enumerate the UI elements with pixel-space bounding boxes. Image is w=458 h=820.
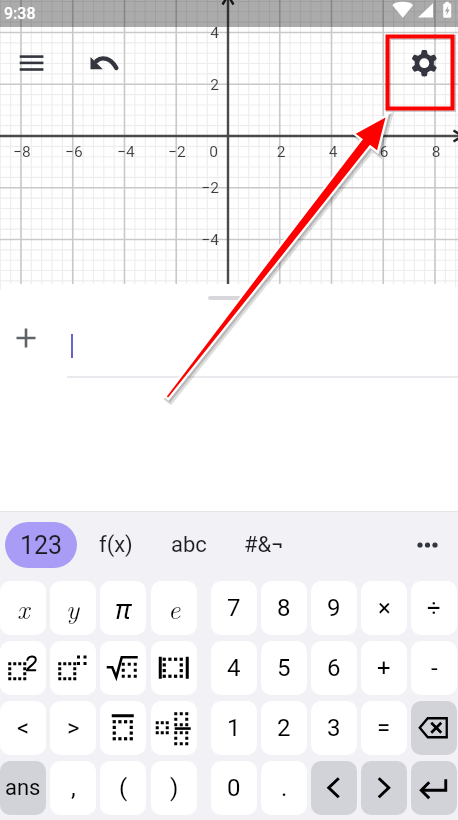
staticText: f(x) <box>99 532 133 558</box>
button[interactable]: 5 <box>261 641 307 695</box>
button[interactable]: × <box>361 581 407 635</box>
button[interactable]: abc <box>160 522 218 568</box>
button[interactable]: . <box>261 761 307 815</box>
button[interactable]: Square root <box>100 641 146 695</box>
staticText: −4 <box>183 231 219 249</box>
staticText: 4 <box>319 143 347 161</box>
staticText: > <box>67 714 80 742</box>
button[interactable]: > <box>50 701 96 755</box>
button[interactable]: x <box>0 581 46 635</box>
staticText: 3 <box>327 714 341 742</box>
staticText: −6 <box>60 143 88 161</box>
staticText: e <box>168 589 181 627</box>
staticText: ÷ <box>427 594 441 622</box>
button[interactable]: 8 <box>261 581 307 635</box>
staticText: abc <box>171 532 207 558</box>
button[interactable]: More options <box>407 522 453 568</box>
staticText: × <box>378 594 391 622</box>
button[interactable]: Fraction <box>100 701 146 755</box>
button[interactable]: 1 <box>211 701 257 755</box>
button[interactable]: Add expression <box>8 320 44 356</box>
button[interactable]: 0 <box>211 761 257 815</box>
staticText: < <box>17 714 30 742</box>
staticText: + <box>377 654 391 682</box>
staticText: 7 <box>227 594 241 622</box>
button[interactable]: Move right <box>361 761 407 815</box>
staticText: 9:38 <box>4 4 36 23</box>
button[interactable]: Square <box>0 641 46 695</box>
staticText: −2 <box>163 143 191 161</box>
button[interactable]: 9 <box>311 581 357 635</box>
button[interactable]: Mixed fraction <box>151 701 197 755</box>
staticText: 4 <box>227 654 241 682</box>
staticText: 123 <box>20 531 63 560</box>
button[interactable]: Undo <box>78 40 130 92</box>
staticText: 8 <box>277 594 291 622</box>
button[interactable]: Absolute value <box>151 641 197 695</box>
button[interactable]: - <box>411 641 457 695</box>
button[interactable]: ( <box>100 761 146 815</box>
staticText: , <box>71 774 76 802</box>
staticText: 1 <box>227 714 241 742</box>
button[interactable]: 7 <box>211 581 257 635</box>
button[interactable]: < <box>0 701 46 755</box>
staticText: ) <box>170 774 179 802</box>
button[interactable]: y <box>50 581 96 635</box>
staticText: #&¬ <box>244 532 284 558</box>
staticText: 6 <box>327 654 341 682</box>
button[interactable]: ans <box>0 761 46 815</box>
staticText: y <box>66 589 80 627</box>
button[interactable]: Backspace <box>411 701 457 755</box>
button[interactable]: 4 <box>211 641 257 695</box>
staticText: = <box>377 714 391 742</box>
staticText: 2 <box>277 714 291 742</box>
staticText: ( <box>119 774 128 802</box>
staticText: 0 <box>204 143 218 161</box>
staticText: π <box>115 590 131 627</box>
button[interactable]: Enter <box>411 761 457 815</box>
button[interactable]: , <box>50 761 96 815</box>
button[interactable]: Power <box>50 641 96 695</box>
button[interactable]: 6 <box>311 641 357 695</box>
staticText: 2 <box>267 143 295 161</box>
button[interactable]: π <box>100 581 146 635</box>
staticText: −4 <box>112 143 140 161</box>
staticText: x <box>17 589 30 627</box>
button[interactable]: 123 <box>5 522 77 568</box>
staticText: ans <box>5 775 41 801</box>
button[interactable]: = <box>361 701 407 755</box>
staticText: 8 <box>422 143 450 161</box>
button[interactable]: 3 <box>311 701 357 755</box>
button[interactable]: e <box>151 581 197 635</box>
staticText: 0 <box>227 774 241 802</box>
button[interactable]: ÷ <box>411 581 457 635</box>
staticText: . <box>281 774 288 802</box>
button[interactable]: f(x) <box>87 522 145 568</box>
button[interactable]: #&¬ <box>235 522 293 568</box>
staticText: 2 <box>183 76 219 94</box>
button[interactable]: ) <box>151 761 197 815</box>
staticText: 5 <box>277 654 291 682</box>
staticText: −8 <box>8 143 36 161</box>
button[interactable]: Menu <box>6 40 58 92</box>
staticText: - <box>431 654 438 682</box>
staticText: −2 <box>183 179 219 197</box>
staticText: 4 <box>183 24 219 42</box>
staticText: 6 <box>370 143 398 161</box>
button[interactable]: Settings <box>394 37 455 98</box>
button[interactable]: + <box>361 641 407 695</box>
staticText: 9 <box>327 594 341 622</box>
button[interactable]: 2 <box>261 701 307 755</box>
button[interactable]: Move left <box>311 761 357 815</box>
